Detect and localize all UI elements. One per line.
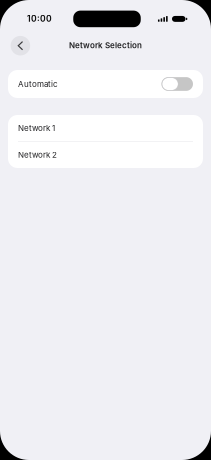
- button[interactable]: Back: [11, 36, 30, 55]
- staticText: Automatic: [18, 79, 58, 89]
- staticText: Network 1: [18, 123, 55, 133]
- staticText: Network 2: [18, 150, 57, 160]
- staticText: Network Selection: [69, 40, 142, 50]
- button[interactable]: Network 2: [8, 142, 203, 168]
- staticText: 10:00: [27, 13, 52, 24]
- button[interactable]: Network 1: [8, 115, 203, 141]
- button[interactable]: Automatic: [8, 70, 203, 98]
